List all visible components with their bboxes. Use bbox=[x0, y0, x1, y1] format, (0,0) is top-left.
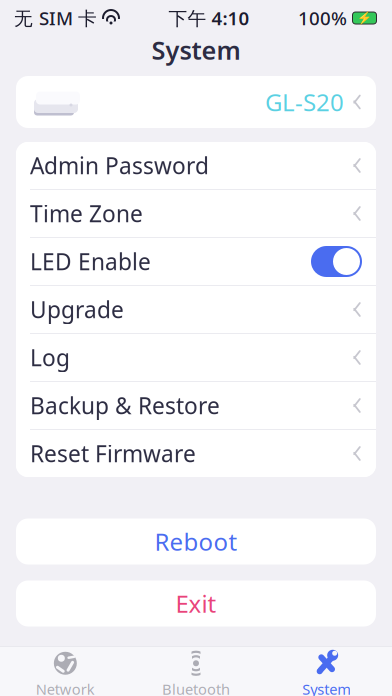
button[interactable]: Admin Password bbox=[16, 142, 376, 189]
staticText: Time Zone bbox=[30, 198, 143, 228]
staticText: Bluetooth bbox=[162, 679, 230, 696]
button[interactable]: Reset Firmware bbox=[16, 430, 376, 477]
button[interactable]: Backup & Restore bbox=[16, 382, 376, 429]
staticText: Log bbox=[30, 342, 70, 372]
staticText: Upgrade bbox=[30, 294, 124, 324]
button[interactable]: Log bbox=[16, 334, 376, 381]
staticText: System bbox=[302, 679, 351, 696]
button[interactable]: Bluetooth bbox=[131, 644, 261, 696]
staticText: GL-S20 bbox=[265, 86, 344, 118]
staticText: System bbox=[151, 33, 240, 67]
staticText: Exit bbox=[175, 588, 216, 619]
button[interactable]: System bbox=[261, 644, 392, 696]
staticText: 下午 4:10 bbox=[168, 6, 249, 30]
button[interactable]: LED Enable toggle bbox=[311, 246, 362, 277]
staticText: 无 SIM 卡 bbox=[14, 6, 97, 30]
button[interactable]: Upgrade bbox=[16, 286, 376, 333]
button[interactable]: Network bbox=[0, 644, 131, 696]
button[interactable]: Time Zone bbox=[16, 190, 376, 237]
staticText: Network bbox=[36, 679, 95, 696]
staticText: Reboot bbox=[154, 526, 237, 557]
staticText: Reset Firmware bbox=[30, 438, 196, 468]
button[interactable]: GL-S20 bbox=[16, 76, 376, 128]
staticText: LED Enable bbox=[30, 246, 151, 276]
staticText: ⚡ bbox=[357, 11, 372, 25]
staticText: Admin Password bbox=[30, 150, 209, 180]
staticText: Backup & Restore bbox=[30, 390, 220, 420]
button[interactable]: Reboot bbox=[16, 518, 376, 564]
button[interactable]: Exit bbox=[16, 580, 376, 626]
staticText: 100% bbox=[298, 6, 347, 30]
